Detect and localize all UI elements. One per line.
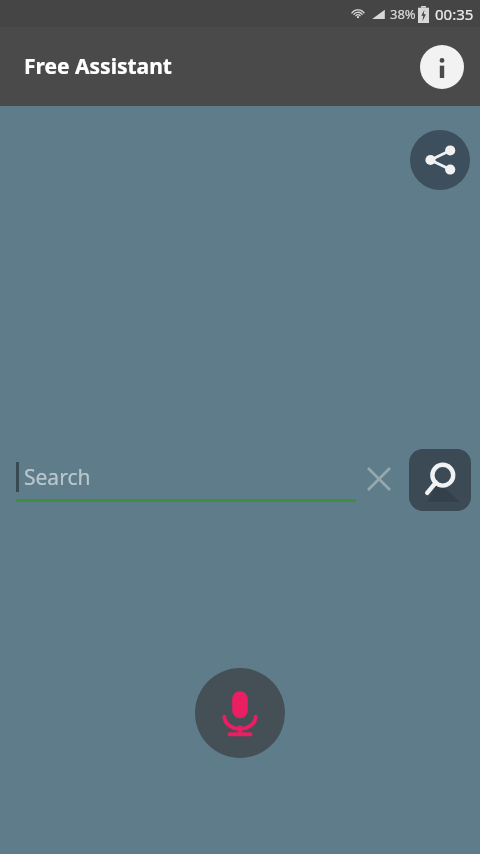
staticText: Search — [24, 463, 91, 492]
staticText: Free Assistant — [24, 52, 172, 81]
button[interactable]: Clear — [358, 458, 400, 500]
button[interactable]: Voice search — [195, 668, 285, 758]
button[interactable]: Search — [409, 449, 471, 511]
button[interactable]: Info — [418, 43, 466, 91]
staticText: 38% — [390, 5, 416, 23]
button[interactable]: Search — [14, 458, 354, 506]
staticText: 00:35 — [435, 4, 474, 24]
button[interactable]: Share — [410, 130, 470, 190]
